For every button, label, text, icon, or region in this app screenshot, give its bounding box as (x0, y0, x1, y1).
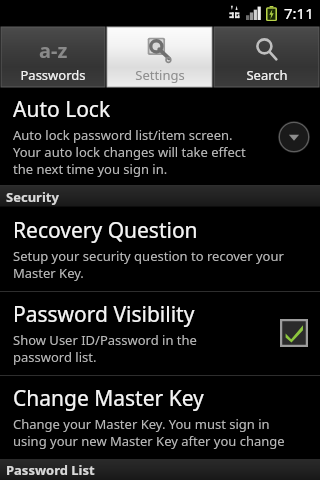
staticText: Auto Lock (13, 95, 111, 124)
staticText: Passwords (20, 66, 86, 84)
staticText: Settings (135, 66, 185, 84)
button[interactable]: Recovery Question (0, 207, 320, 291)
button[interactable]: Change Master Key (0, 376, 320, 459)
button[interactable]: Search (214, 27, 319, 87)
button[interactable]: a-z (1, 27, 105, 87)
button[interactable]: Password Visibility (0, 292, 320, 375)
button[interactable]: Auto lock options (278, 121, 310, 153)
button[interactable]: Password visibility checkbox (279, 318, 309, 348)
staticText: Show User ID/Password in the password li… (13, 331, 197, 366)
button[interactable]: Auto Lock (0, 89, 320, 185)
staticText: Auto lock password list/item screen. You… (13, 126, 246, 178)
staticText: Password Visibility (13, 300, 195, 329)
staticText: 7:11 (284, 3, 314, 23)
staticText: Search (246, 66, 288, 84)
staticText: Change your Master Key. You must sign in… (13, 415, 285, 451)
staticText: a-z (39, 37, 68, 64)
staticText: Password List (6, 461, 95, 479)
staticText: Security (6, 188, 59, 206)
staticText: Setup your security question to recover … (13, 247, 284, 282)
staticText: Recovery Question (13, 216, 198, 245)
button[interactable]: Settings (107, 27, 212, 87)
button[interactable]: Password List (0, 459, 320, 480)
staticText: Change Master Key (13, 384, 204, 413)
